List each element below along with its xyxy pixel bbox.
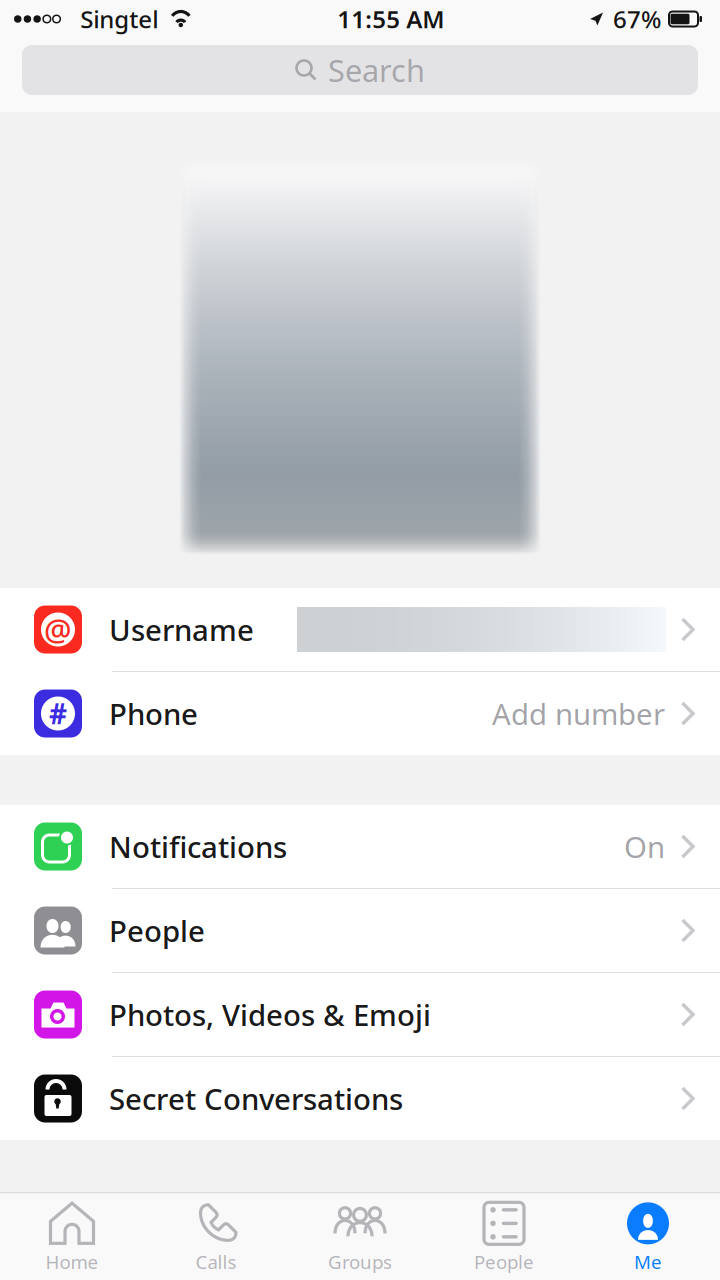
button[interactable]: People: [432, 1193, 576, 1280]
staticText: @: [44, 609, 72, 650]
staticText: Groups: [328, 1249, 392, 1274]
button[interactable]: #: [0, 672, 720, 755]
staticText: 11:55 AM: [337, 3, 444, 35]
staticText: People: [109, 911, 205, 950]
button[interactable]: Notifications: [0, 805, 720, 888]
staticText: Phone: [109, 694, 198, 733]
button[interactable]: Photos, Videos & Emoji: [0, 973, 720, 1056]
button[interactable]: @: [0, 588, 720, 671]
staticText: Search: [328, 50, 425, 90]
button[interactable]: Secret Conversations: [0, 1057, 720, 1140]
staticText: Me: [634, 1249, 662, 1274]
staticText: Singtel: [80, 3, 158, 35]
staticText: People: [474, 1249, 534, 1274]
staticText: Home: [45, 1249, 98, 1274]
button[interactable]: Me: [576, 1193, 720, 1280]
button[interactable]: People: [0, 889, 720, 972]
staticText: Secret Conversations: [109, 1079, 403, 1118]
staticText: Username: [109, 610, 254, 649]
button[interactable]: Groups: [288, 1193, 432, 1280]
staticText: 67%: [613, 3, 661, 35]
staticText: #: [49, 695, 67, 732]
staticText: On: [624, 827, 665, 866]
staticText: Add number: [492, 694, 665, 733]
staticText: Photos, Videos & Emoji: [109, 995, 431, 1034]
button[interactable]: Search: [0, 45, 720, 95]
staticText: Notifications: [109, 827, 287, 866]
button[interactable]: Calls: [144, 1193, 288, 1280]
button[interactable]: Home: [0, 1193, 144, 1280]
staticText: Calls: [195, 1249, 236, 1274]
